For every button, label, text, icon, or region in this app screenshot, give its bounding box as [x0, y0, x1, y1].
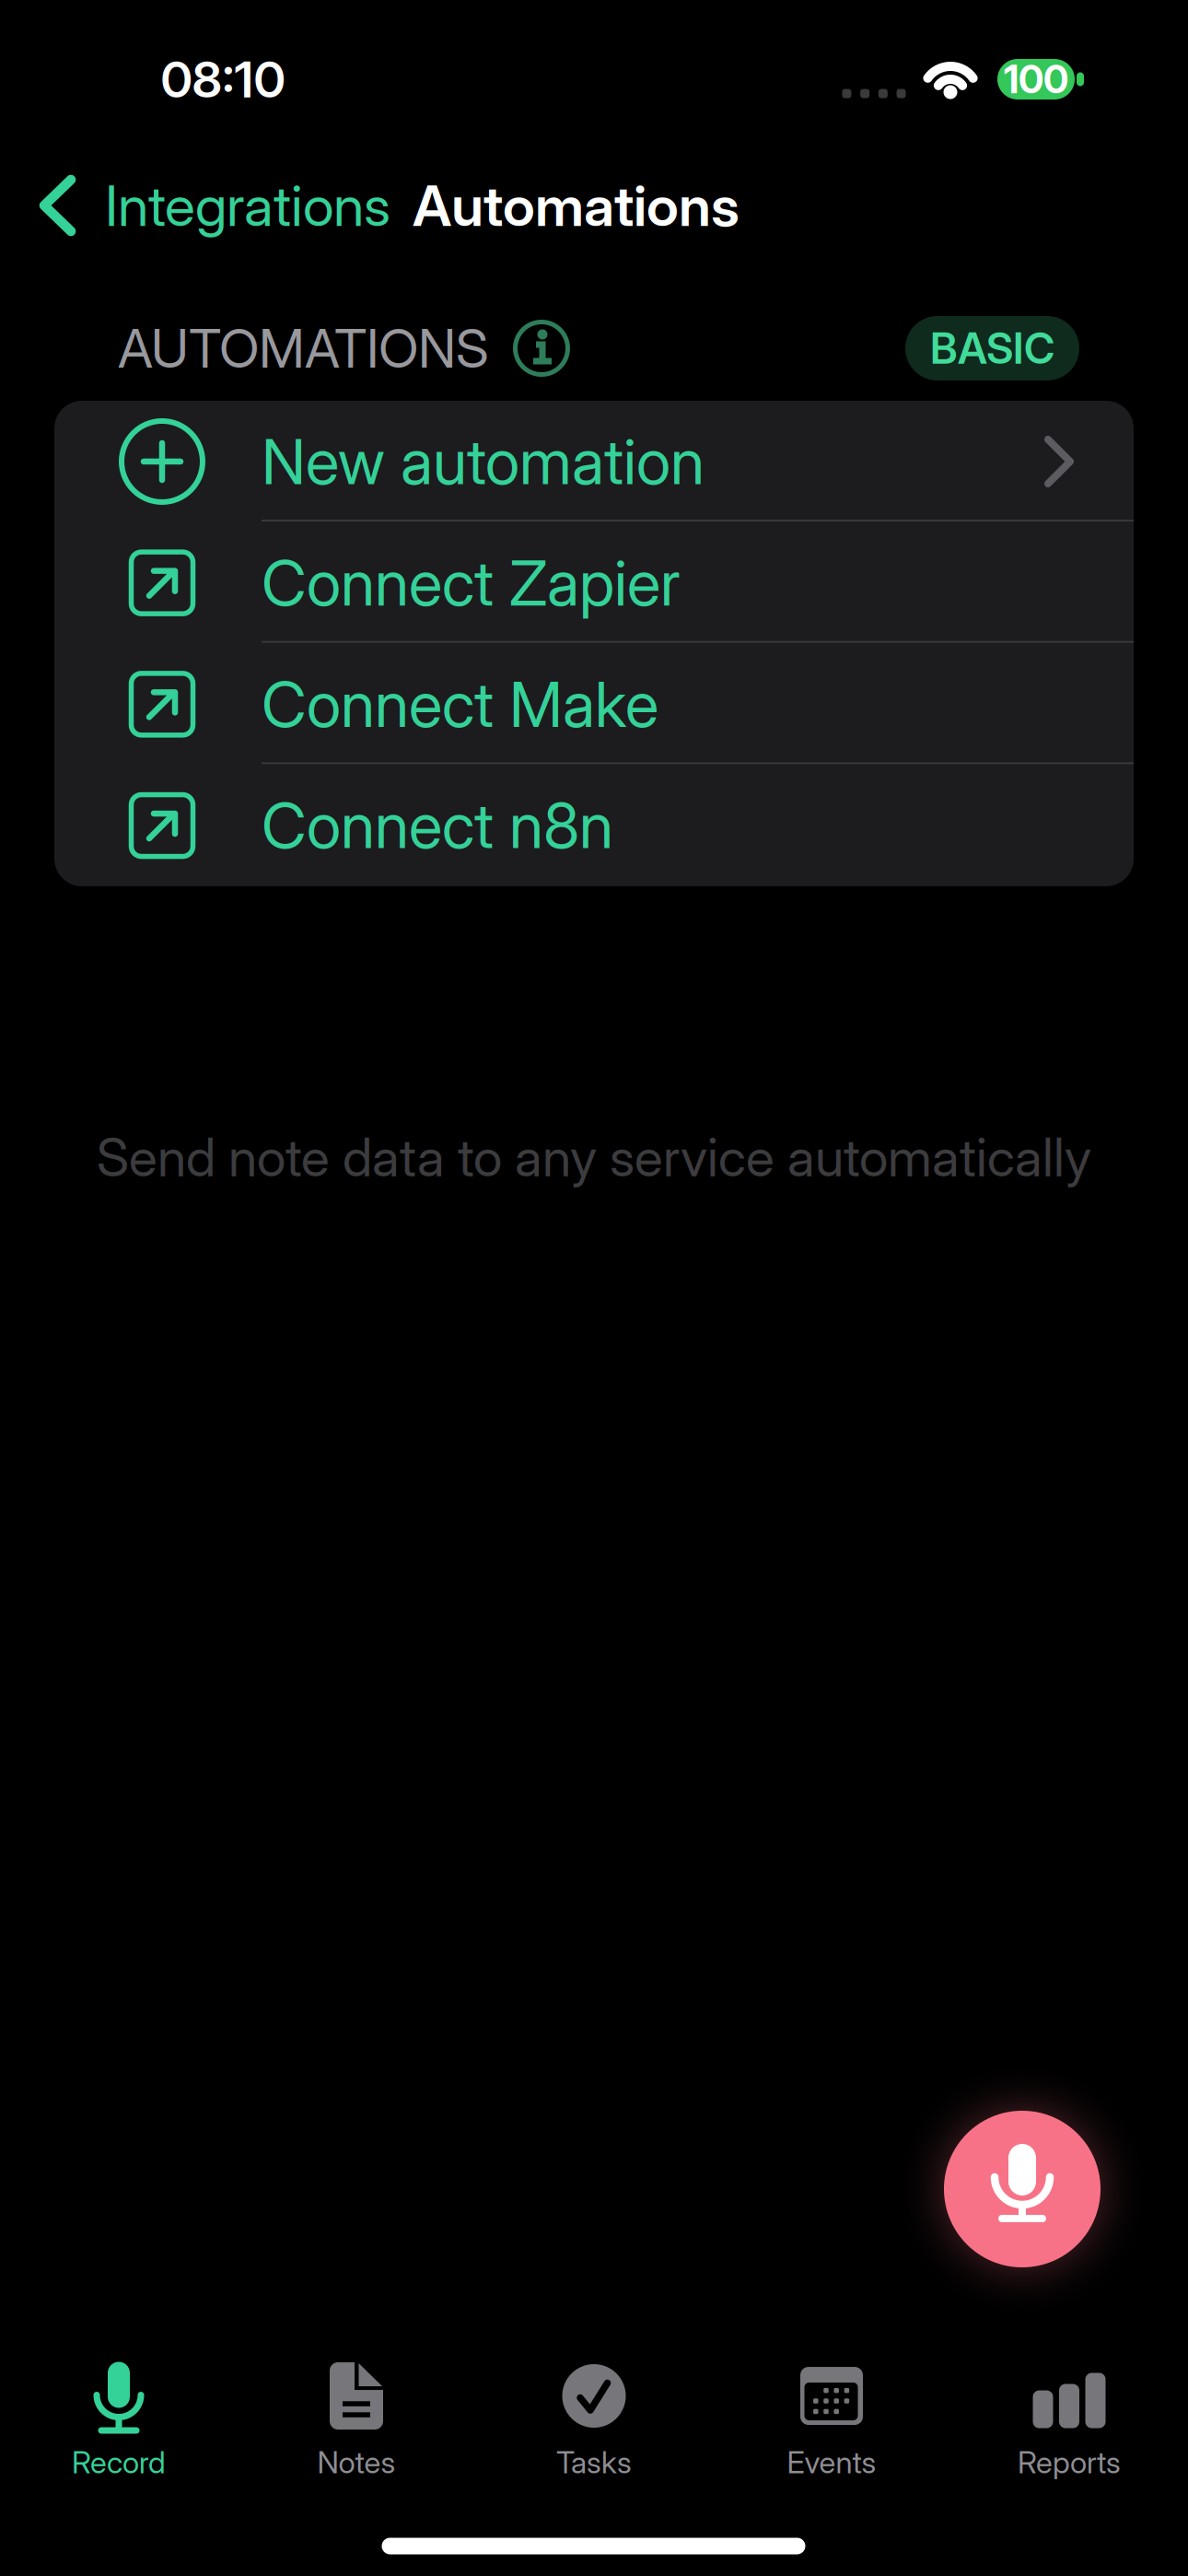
button[interactable]: Connect n8n	[54, 765, 1134, 886]
staticText: Record	[72, 2444, 166, 2481]
button[interactable]: Events	[713, 2361, 950, 2481]
staticText: Integrations	[105, 171, 390, 239]
button[interactable]: Integrations	[37, 164, 390, 247]
button[interactable]: Reports	[950, 2361, 1188, 2481]
button[interactable]: BASIC	[905, 316, 1079, 381]
staticText: BASIC	[930, 323, 1054, 374]
staticText: New automation	[262, 424, 705, 499]
staticText: Reports	[1018, 2444, 1121, 2481]
staticText: Send note data to any service automatica…	[97, 1125, 1091, 1189]
staticText: 100	[1004, 56, 1068, 103]
staticText: Connect Zapier	[262, 545, 681, 621]
button[interactable]: About automations	[513, 320, 570, 377]
button[interactable]: Record	[944, 2111, 1101, 2267]
staticText: Connect Make	[262, 667, 658, 742]
staticText: AUTOMATIONS	[118, 316, 489, 381]
staticText: 08:10	[161, 49, 285, 109]
staticText: Tasks	[556, 2444, 632, 2481]
button[interactable]: Tasks	[475, 2361, 713, 2481]
button[interactable]: Connect Zapier	[54, 522, 1134, 644]
button[interactable]: Record	[0, 2361, 238, 2481]
staticText: Events	[787, 2444, 876, 2481]
staticText: Notes	[317, 2444, 396, 2481]
staticText: Connect n8n	[262, 788, 613, 863]
staticText: Automations	[413, 171, 740, 239]
button[interactable]: Notes	[238, 2361, 475, 2481]
button[interactable]: New automation	[54, 401, 1134, 522]
button[interactable]: Connect Make	[54, 644, 1134, 765]
